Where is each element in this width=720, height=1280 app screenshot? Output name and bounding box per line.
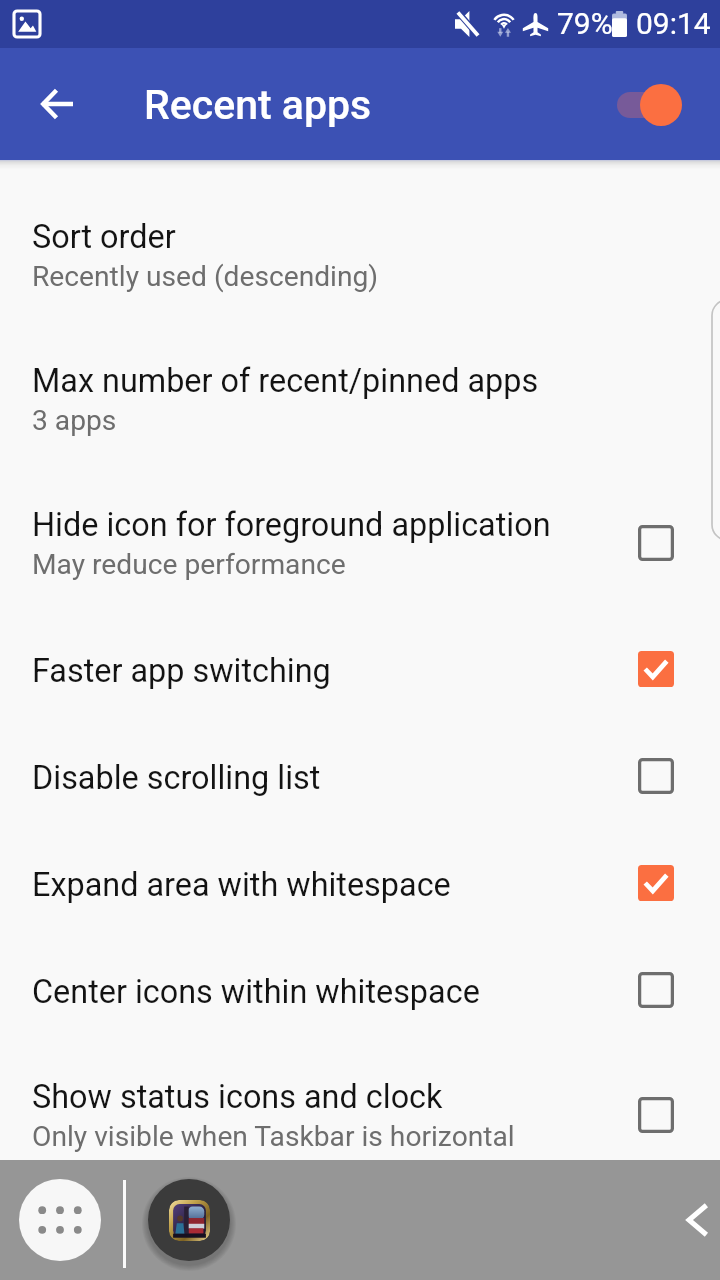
staticText: Expand area with whitespace xyxy=(32,866,451,904)
button[interactable]: Disable scrolling list xyxy=(628,748,684,804)
staticText: Disable scrolling list xyxy=(32,759,321,797)
button[interactable]: Expand area with whitespace xyxy=(628,855,684,911)
button[interactable]: Expand area with whitespace xyxy=(0,829,720,936)
button[interactable]: Max number of recent/pinned apps xyxy=(0,327,720,471)
staticText: 79% xyxy=(557,6,613,41)
staticText: Only visible when Taskbar is horizontal xyxy=(32,1120,515,1153)
button[interactable]: Sort order xyxy=(0,183,720,327)
button[interactable]: Toggle taskbar xyxy=(610,77,690,133)
button[interactable]: Hide icon for foreground application xyxy=(628,515,684,571)
button[interactable]: Show status icons and clock xyxy=(0,1043,720,1187)
staticText: Recent apps xyxy=(144,81,372,129)
staticText: Show status icons and clock xyxy=(32,1078,443,1116)
staticText: Hide icon for foreground application xyxy=(32,506,551,544)
button[interactable]: Faster app switching xyxy=(0,615,720,722)
button[interactable]: Faster app switching xyxy=(628,641,684,697)
staticText: Sort order xyxy=(32,218,176,256)
button[interactable]: Center icons within whitespace xyxy=(0,936,720,1043)
button[interactable]: Show status icons and clock xyxy=(628,1087,684,1143)
staticText: 3 apps xyxy=(32,404,117,437)
staticText: Center icons within whitespace xyxy=(32,973,480,1011)
button[interactable]: Hide icon for foreground application xyxy=(0,471,720,615)
staticText: 09:14 xyxy=(636,6,711,41)
staticText: Recently used (descending) xyxy=(32,260,379,293)
button[interactable]: Bus Simulator xyxy=(148,1179,230,1261)
button[interactable]: Center icons within whitespace xyxy=(628,962,684,1018)
staticText: May reduce performance xyxy=(32,548,346,581)
button[interactable]: Navigate up xyxy=(24,72,88,136)
button[interactable]: Disable scrolling list xyxy=(0,722,720,829)
button[interactable]: Back xyxy=(668,1192,720,1248)
button[interactable]: All apps xyxy=(19,1179,101,1261)
staticText: Max number of recent/pinned apps xyxy=(32,362,539,400)
staticText: Faster app switching xyxy=(32,652,331,690)
